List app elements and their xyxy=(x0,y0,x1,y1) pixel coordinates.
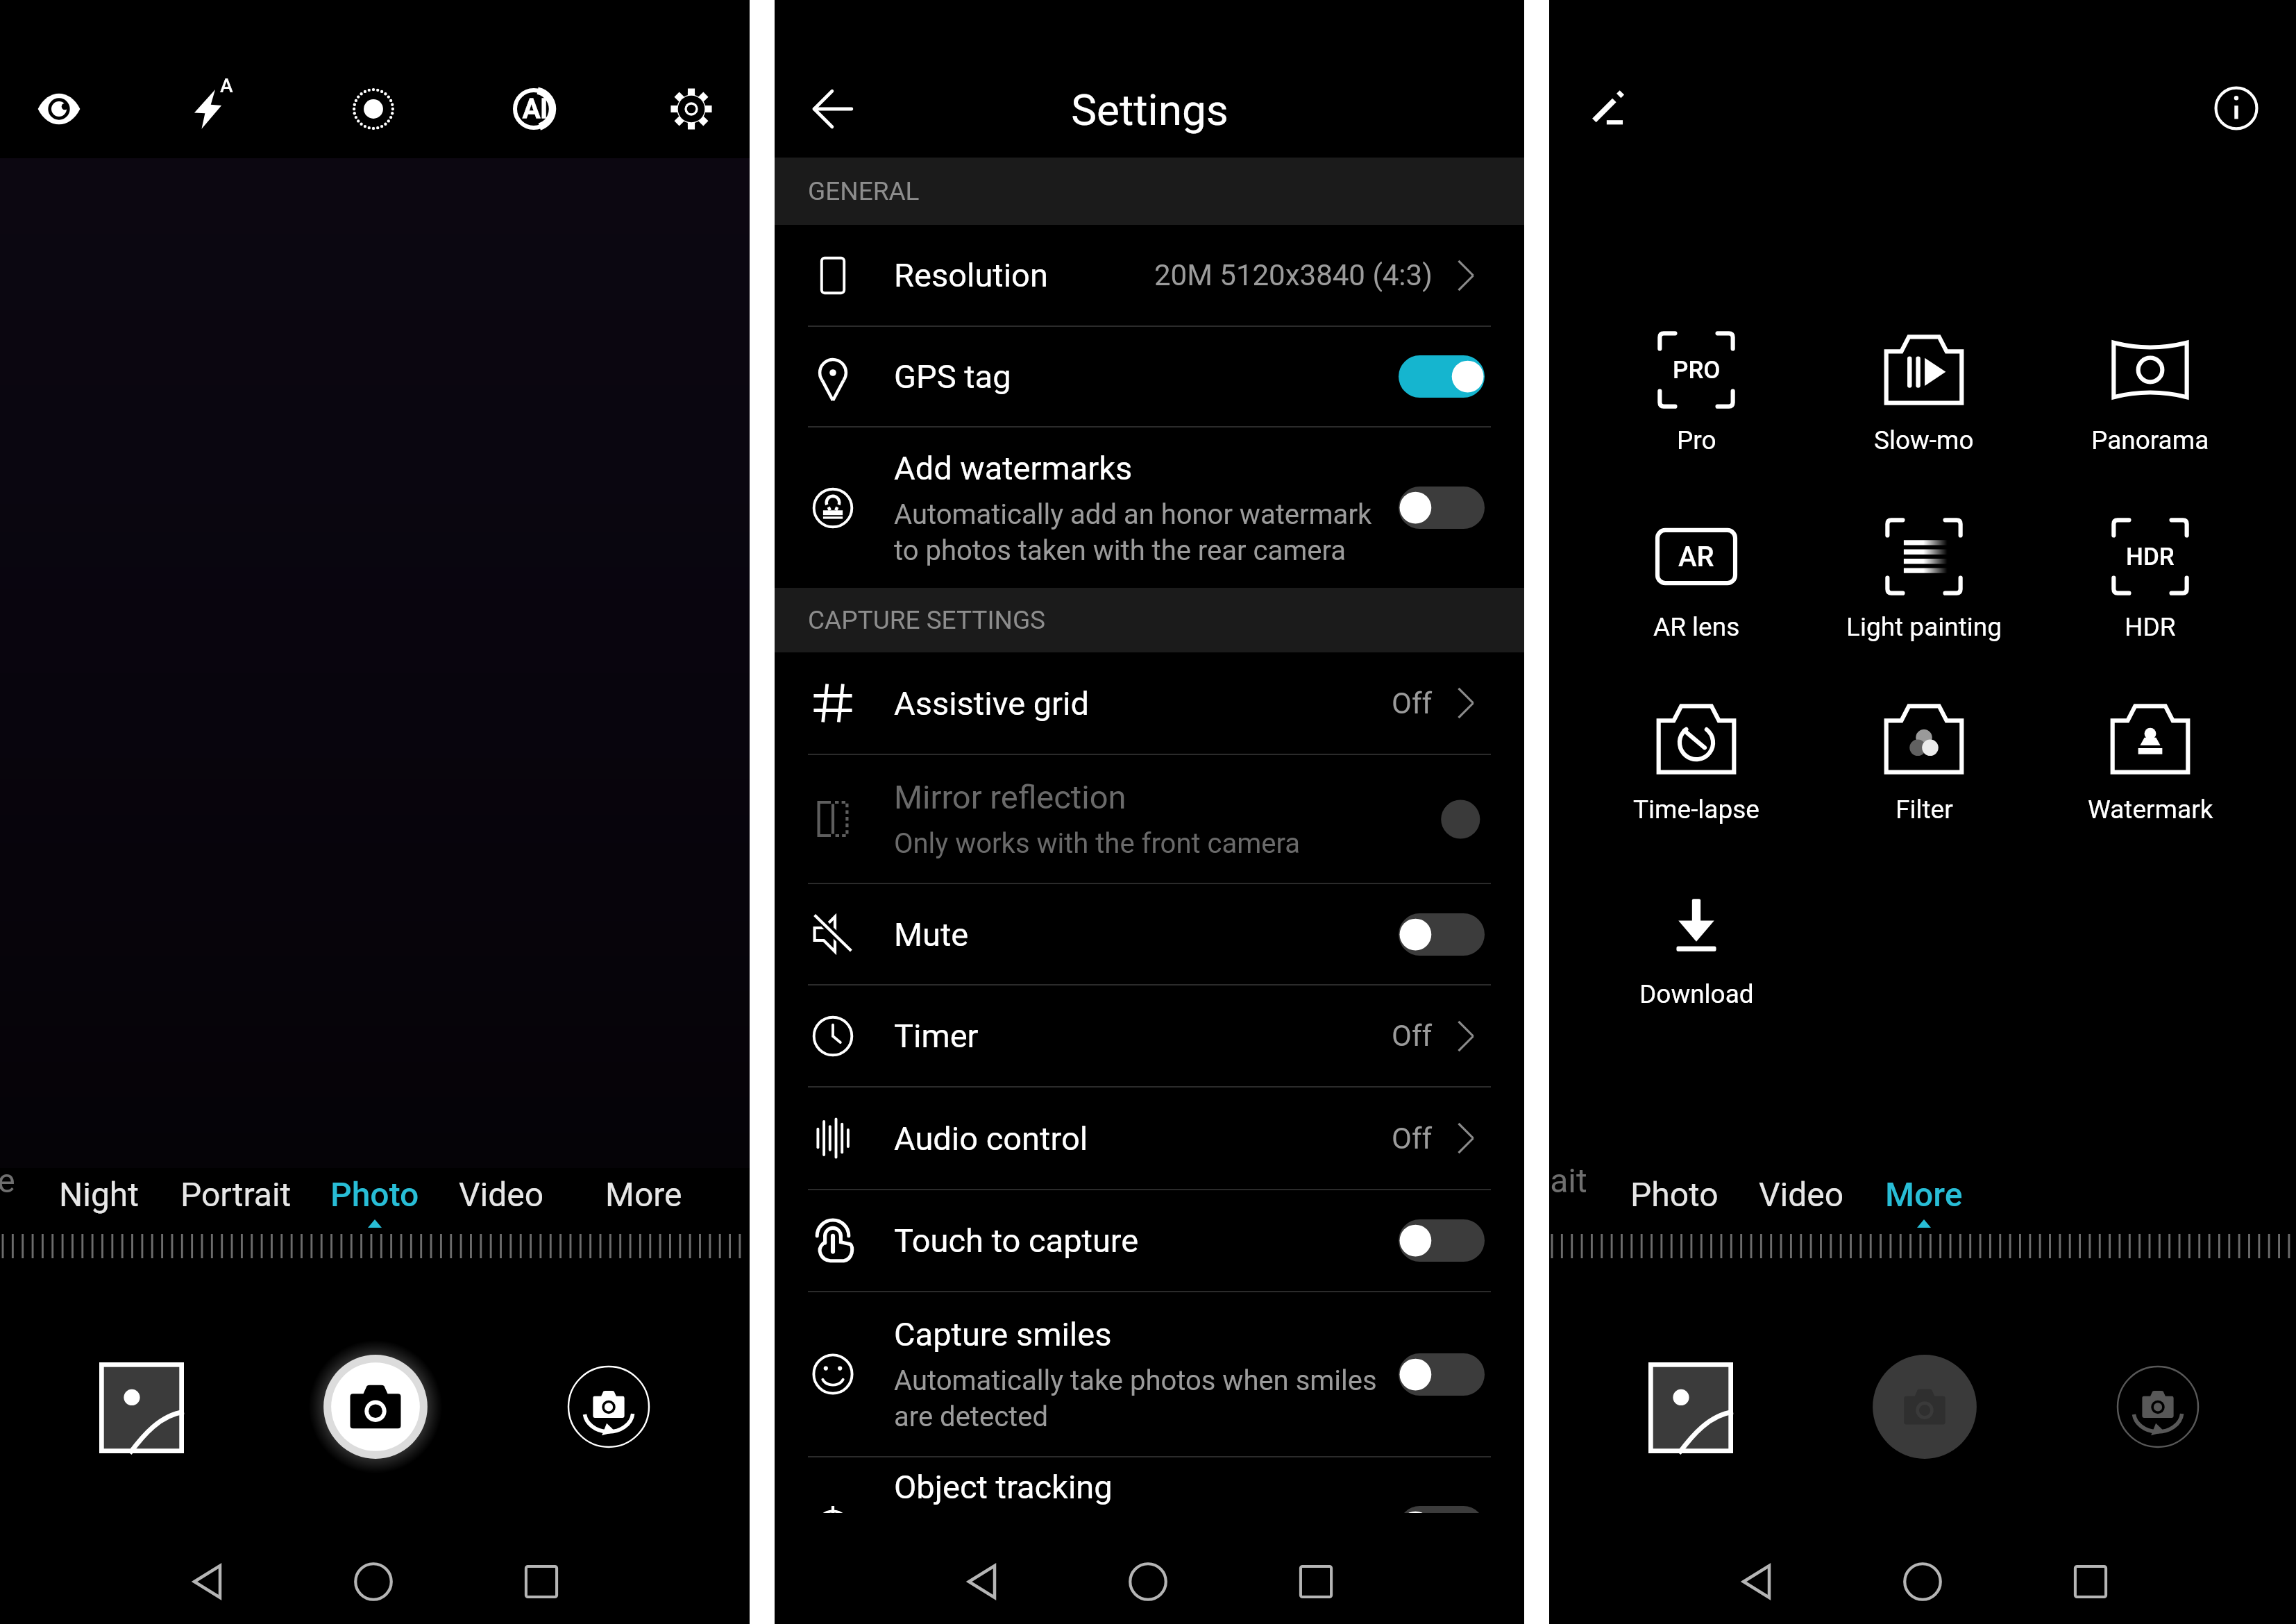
button[interactable]: Watermark xyxy=(2039,678,2261,838)
button[interactable]: GPS tag xyxy=(775,327,1524,426)
staticText: Panorama xyxy=(2091,425,2209,455)
button[interactable]: Info xyxy=(2199,71,2274,146)
button[interactable]: Slow-mo xyxy=(1813,309,2035,468)
staticText: Touch to capture xyxy=(894,1221,1139,1260)
staticText: Photo xyxy=(1630,1175,1719,1214)
staticText: HDR xyxy=(2125,612,2176,642)
staticText: Automatically add an honor watermark to … xyxy=(894,498,1372,567)
staticText: GENERAL xyxy=(808,176,920,206)
button[interactable]: Download xyxy=(1585,863,1807,1022)
staticText: Filter xyxy=(1896,795,1953,824)
staticText: AR xyxy=(1678,541,1714,573)
staticText: Automatically take photos when smiles ar… xyxy=(894,1364,1377,1433)
button[interactable]: Portrait blur xyxy=(22,72,96,146)
button[interactable]: Night xyxy=(19,1153,179,1236)
button[interactable]: HDR xyxy=(2039,496,2261,655)
staticText: Settings xyxy=(1071,85,1229,135)
button[interactable]: Back xyxy=(951,1549,1016,1614)
staticText: Portrait xyxy=(180,1175,292,1214)
staticText: Photo xyxy=(330,1175,419,1214)
button[interactable]: Shutter xyxy=(1858,1340,1991,1473)
button[interactable]: Portrait xyxy=(156,1153,316,1236)
staticText: Resolution xyxy=(894,256,1048,294)
staticText: Off xyxy=(1392,1019,1433,1053)
button[interactable]: AI mode xyxy=(499,74,568,144)
button[interactable]: Photo xyxy=(1594,1153,1754,1236)
staticText: AR lens xyxy=(1653,612,1740,642)
staticText: Mute xyxy=(894,915,969,954)
button[interactable]: Recents xyxy=(1284,1550,1348,1614)
staticText: Object tracking xyxy=(894,1468,1113,1506)
button[interactable]: Video xyxy=(1721,1153,1881,1236)
button[interactable]: Edit modes xyxy=(1572,73,1643,144)
staticText: More xyxy=(605,1175,682,1214)
button[interactable]: Home xyxy=(339,1547,408,1616)
button[interactable]: Settings xyxy=(655,73,727,145)
staticText: Mirror reflection xyxy=(894,778,1126,816)
button[interactable]: Light painting xyxy=(1813,496,2035,655)
button[interactable]: More xyxy=(1844,1153,2004,1236)
button[interactable]: Time-lapse xyxy=(1585,678,1807,838)
button[interactable]: Capture smiles xyxy=(775,1292,1524,1456)
staticText: Off xyxy=(1392,1122,1433,1156)
staticText: Download xyxy=(1639,979,1754,1009)
button[interactable]: AR xyxy=(1585,496,1807,655)
button[interactable]: Add watermarks xyxy=(775,428,1524,588)
staticText: A xyxy=(220,74,233,97)
button[interactable]: Back xyxy=(176,1549,242,1614)
button[interactable]: Gallery xyxy=(1648,1362,1733,1453)
staticText: Video xyxy=(459,1175,544,1214)
staticText: PRO xyxy=(1673,356,1721,384)
button[interactable]: Photo xyxy=(295,1153,455,1236)
button[interactable]: Gallery xyxy=(99,1362,184,1453)
staticText: 20M 5120x3840 (4:3) xyxy=(1154,258,1433,292)
button[interactable]: Switch camera xyxy=(567,1365,650,1448)
staticText: Night xyxy=(59,1175,140,1214)
staticText: HDR xyxy=(2126,543,2175,571)
button[interactable]: Object tracking xyxy=(775,1457,1524,1596)
staticText: Capture smiles xyxy=(894,1315,1112,1353)
staticText: Pro xyxy=(1677,425,1716,455)
staticText: GPS tag xyxy=(894,357,1011,396)
button[interactable]: Filter xyxy=(1813,678,2035,838)
staticText: Watermark xyxy=(2088,795,2213,824)
button[interactable]: Shutter xyxy=(309,1340,442,1473)
button[interactable]: Timer xyxy=(775,986,1524,1086)
staticText: Automatically keep the subject in focus … xyxy=(894,1517,1378,1586)
staticText: Slow-mo xyxy=(1874,425,1974,455)
button[interactable]: Switch camera xyxy=(2116,1365,2200,1448)
button[interactable]: Touch to capture xyxy=(775,1190,1524,1291)
button[interactable]: Mirror reflection xyxy=(775,755,1524,883)
button[interactable]: Panorama xyxy=(2039,309,2261,468)
staticText: Light painting xyxy=(1846,612,2002,642)
button[interactable]: Home xyxy=(1888,1547,1957,1616)
staticText: CAPTURE SETTINGS xyxy=(808,605,1046,635)
staticText: Assistive grid xyxy=(894,684,1089,722)
button[interactable]: Colour mode xyxy=(335,70,412,148)
button[interactable]: Back xyxy=(1725,1549,1791,1614)
button[interactable]: Flash auto xyxy=(177,71,253,147)
button[interactable]: Home xyxy=(1113,1547,1183,1616)
button[interactable]: Recents xyxy=(2059,1550,2122,1614)
button[interactable]: More xyxy=(564,1153,723,1236)
button[interactable]: Audio control xyxy=(775,1088,1524,1189)
button[interactable]: Mute xyxy=(775,884,1524,984)
button[interactable]: Resolution xyxy=(775,225,1524,325)
button[interactable]: Assistive grid xyxy=(775,652,1524,754)
staticText: Audio control xyxy=(894,1119,1088,1158)
staticText: AI xyxy=(523,94,548,125)
staticText: e xyxy=(0,1161,15,1200)
button[interactable]: PRO xyxy=(1585,309,1807,468)
staticText: Time-lapse xyxy=(1633,795,1759,824)
button[interactable]: Back xyxy=(798,74,868,144)
staticText: ait xyxy=(1550,1161,1587,1200)
staticText: Off xyxy=(1392,686,1433,720)
staticText: Video xyxy=(1759,1175,1844,1214)
staticText: Add watermarks xyxy=(894,449,1133,487)
staticText: Only works with the front camera xyxy=(894,827,1301,860)
staticText: More xyxy=(1885,1175,1963,1214)
button[interactable]: Recents xyxy=(509,1550,573,1614)
staticText: Timer xyxy=(894,1017,979,1055)
button[interactable]: Video xyxy=(421,1153,581,1236)
